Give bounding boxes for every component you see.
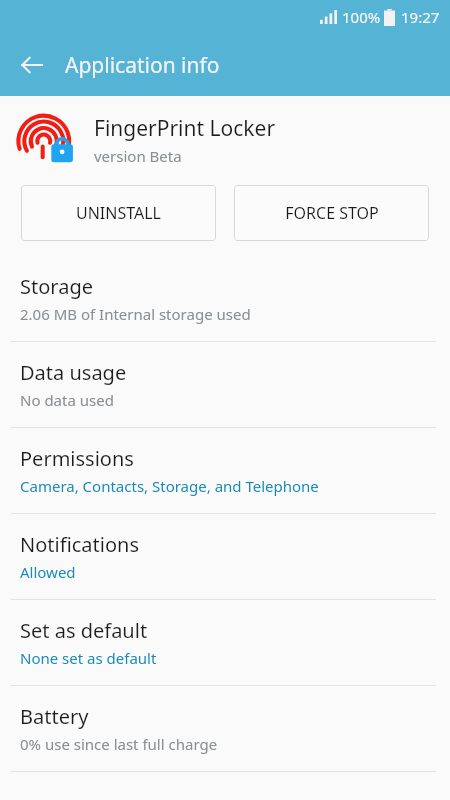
staticText: Camera, Contacts, Storage, and Telephone (20, 476, 319, 496)
staticText: Notifications (20, 531, 139, 558)
button[interactable]: FORCE STOP (234, 185, 429, 241)
staticText: None set as default (20, 648, 157, 668)
button[interactable]: Back (8, 41, 56, 89)
staticText: Data usage (20, 359, 127, 386)
staticText: FingerPrint Locker (94, 114, 276, 143)
button[interactable]: Notifications (0, 514, 450, 599)
staticText: version Beta (94, 146, 182, 166)
staticText: Battery (20, 703, 89, 730)
button[interactable]: Permissions (0, 428, 450, 513)
staticText: Storage (20, 273, 93, 300)
staticText: Allowed (20, 562, 76, 582)
staticText: 19:27 (401, 7, 440, 27)
staticText: 2.06 MB of Internal storage used (20, 304, 251, 324)
button[interactable]: Battery (0, 686, 450, 771)
staticText: 0% use since last full charge (20, 734, 218, 754)
button[interactable]: Set as default (0, 600, 450, 685)
staticText: No data used (20, 390, 114, 410)
staticText: 100% (342, 7, 381, 27)
staticText: UNINSTALL (76, 202, 161, 224)
staticText: FORCE STOP (285, 202, 379, 224)
button[interactable]: Data usage (0, 342, 450, 427)
staticText: Permissions (20, 445, 134, 472)
button[interactable]: Storage (0, 256, 450, 341)
button[interactable]: UNINSTALL (21, 185, 216, 241)
button[interactable]: FingerPrint Locker (0, 96, 450, 184)
staticText: Set as default (20, 617, 148, 644)
staticText: Application info (65, 51, 220, 80)
